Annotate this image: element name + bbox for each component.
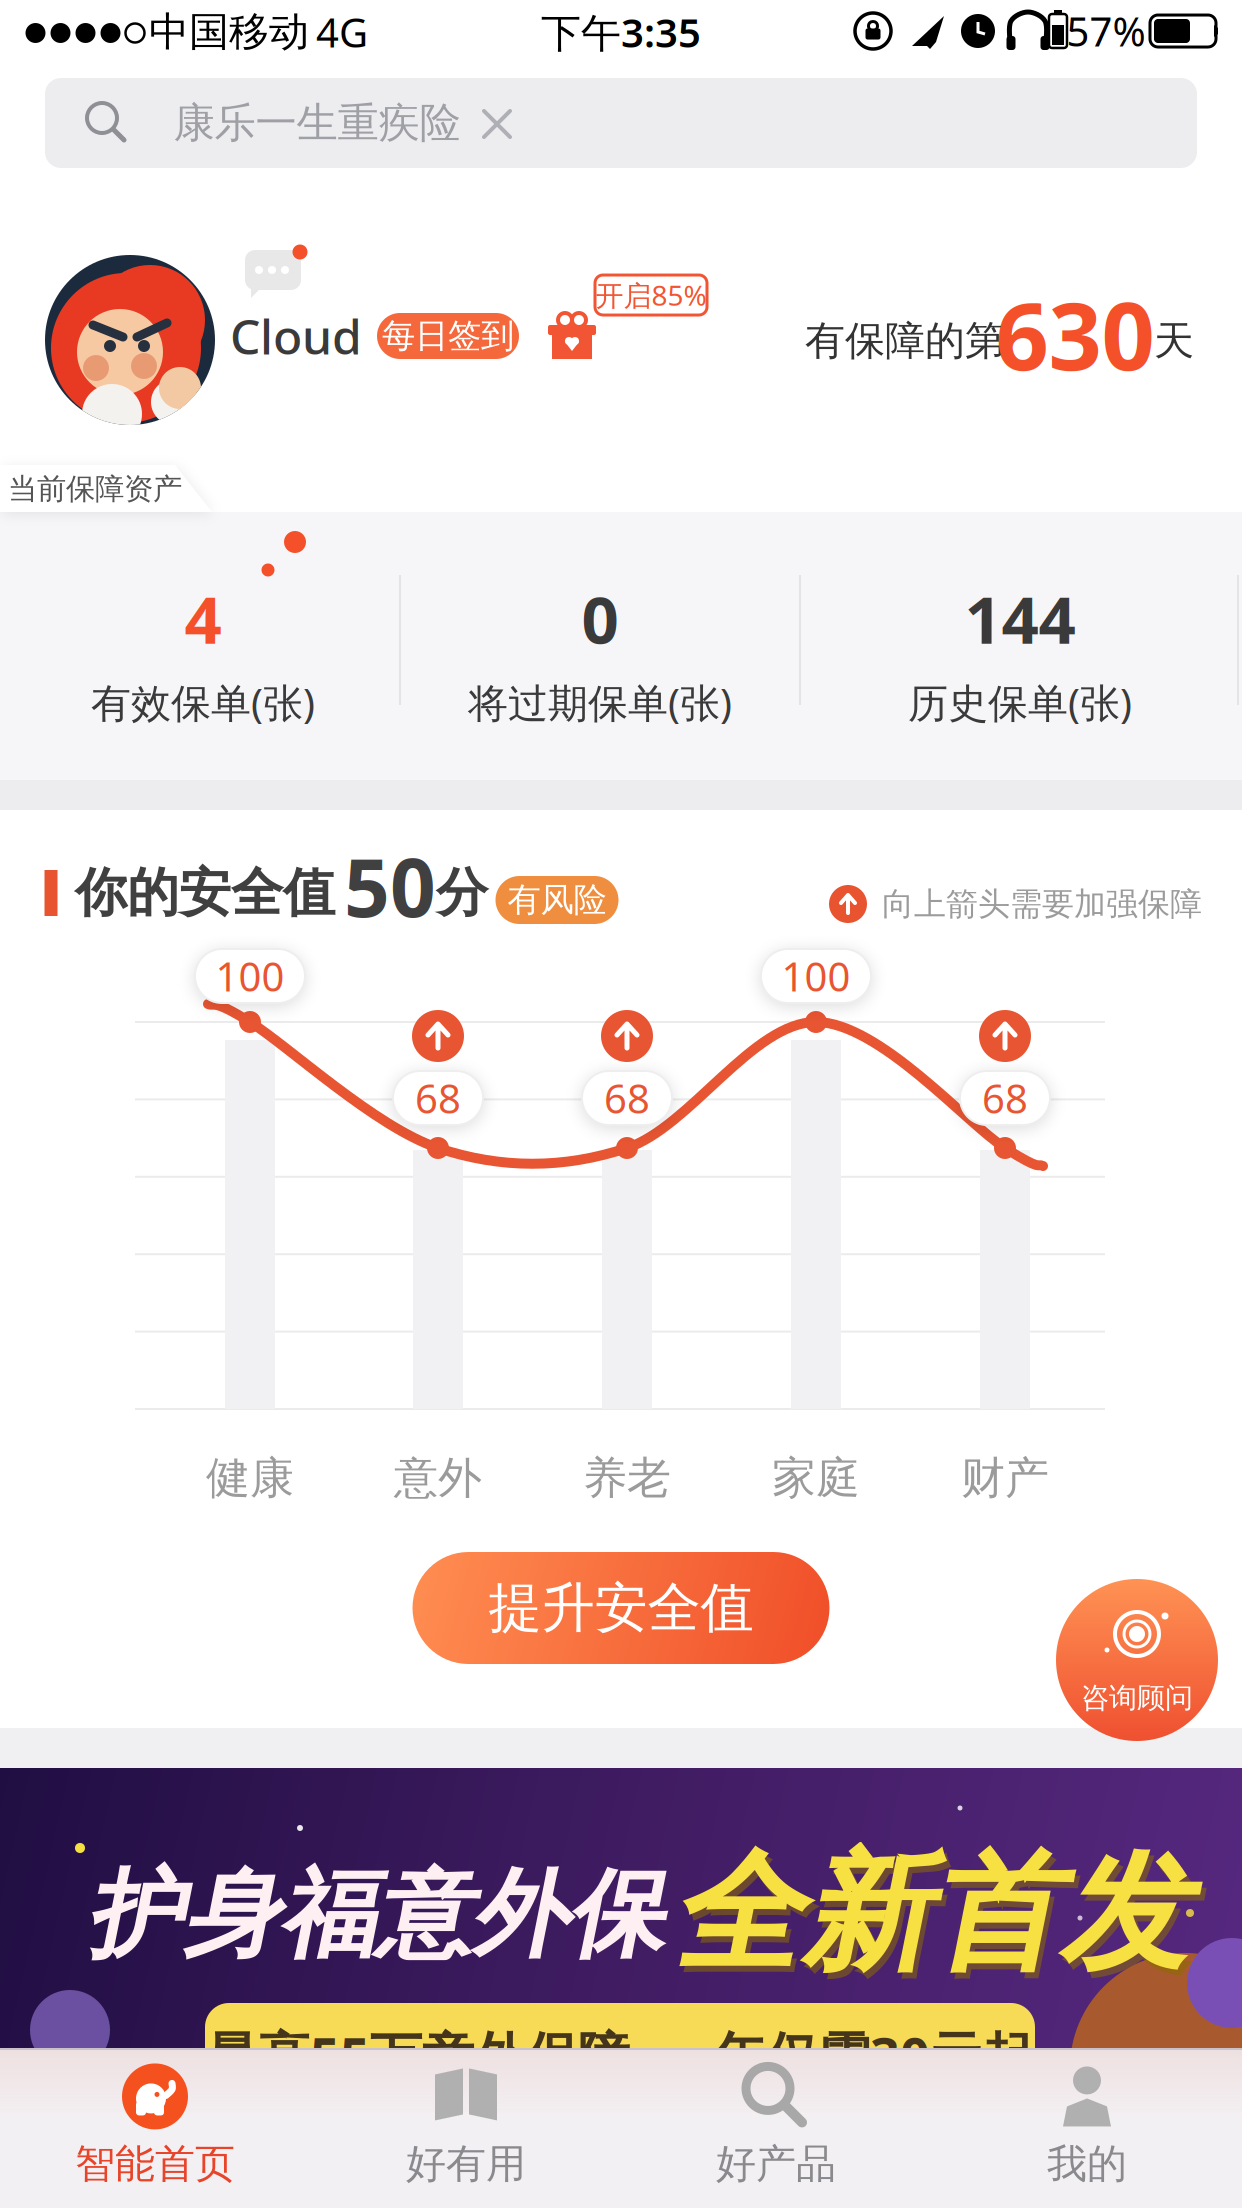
- staticText: 咨询顾问: [1081, 1681, 1193, 1715]
- staticText: 4: [184, 575, 221, 662]
- staticText: 100: [215, 949, 284, 1002]
- staticText: 家庭: [772, 1451, 860, 1505]
- button[interactable]: [550, 313, 594, 359]
- staticText: Cloud: [230, 304, 362, 368]
- staticText: 50: [344, 833, 436, 939]
- button[interactable]: 康乐一生重疾险: [45, 78, 1197, 168]
- button[interactable]: 我的: [932, 2051, 1242, 2201]
- staticText: 护身福意外保: [87, 1856, 663, 1974]
- button[interactable]: 4: [91, 575, 315, 729]
- staticText: 意外: [394, 1451, 482, 1505]
- staticText: 68: [982, 1071, 1028, 1124]
- staticText: 历史保单(张): [908, 676, 1132, 729]
- staticText: 康乐一生重疾险: [173, 98, 460, 148]
- staticText: 将过期保单(张): [468, 676, 732, 729]
- staticText: 0: [581, 575, 618, 662]
- staticText: 57%: [1066, 4, 1145, 57]
- staticText: 68: [604, 1071, 650, 1124]
- staticText: 下午3:35: [541, 5, 701, 58]
- staticText: 好有用: [406, 2139, 526, 2188]
- button[interactable]: 144: [908, 575, 1132, 729]
- staticText: 全新首发: [676, 1841, 1192, 1999]
- staticText: 630: [995, 272, 1154, 396]
- staticText: 养老: [583, 1451, 671, 1505]
- staticText: 分: [436, 861, 488, 925]
- button[interactable]: [45, 255, 215, 425]
- staticText: 财产: [961, 1451, 1049, 1505]
- staticText: 全新首发: [672, 1835, 1188, 1993]
- button[interactable]: 咨询顾问: [1056, 1579, 1218, 1741]
- staticText: 开启85%: [595, 276, 706, 314]
- button[interactable]: 好产品: [621, 2051, 931, 2201]
- staticText: 有保障的第: [805, 316, 1005, 365]
- staticText: 100: [781, 949, 850, 1002]
- staticText: 健康: [206, 1451, 294, 1505]
- staticText: 好产品: [716, 2139, 836, 2188]
- staticText: 4G: [316, 5, 368, 58]
- staticText: 向上箭头需要加强保障: [882, 884, 1202, 924]
- button[interactable]: 好有用: [311, 2051, 621, 2201]
- staticText: 你的安全值: [75, 861, 335, 925]
- staticText: 144: [964, 575, 1075, 662]
- staticText: 最高55万意外保障 一年仅需30元起: [206, 2020, 1034, 2090]
- button[interactable]: 护身福意外保: [0, 1768, 1242, 2048]
- staticText: 提升安全值: [488, 1575, 753, 1641]
- staticText: 68: [415, 1071, 461, 1124]
- staticText: 每日签到: [382, 315, 514, 356]
- button[interactable]: 每日签到: [377, 313, 519, 359]
- staticText: 有效保单(张): [91, 676, 315, 729]
- button[interactable]: [243, 248, 307, 304]
- staticText: 当前保障资产: [8, 471, 182, 507]
- button[interactable]: 智能首页: [0, 2051, 310, 2201]
- staticText: 我的: [1047, 2139, 1127, 2188]
- staticText: 有风险: [507, 879, 606, 920]
- staticText: 智能首页: [75, 2139, 235, 2188]
- button[interactable]: 0: [468, 575, 732, 729]
- staticText: 中国移动: [149, 7, 309, 56]
- button[interactable]: 提升安全值: [412, 1552, 829, 1664]
- staticText: 天: [1154, 316, 1194, 365]
